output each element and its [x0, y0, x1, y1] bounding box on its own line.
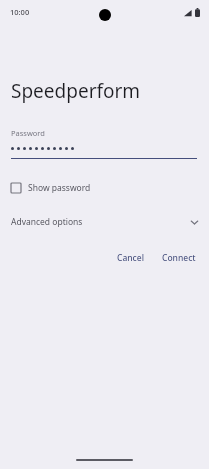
button[interactable]: Connect: [156, 248, 202, 268]
other: Expand advanced options: [189, 217, 200, 228]
staticText: 10:00: [10, 7, 30, 17]
staticText: Show password: [28, 182, 91, 194]
staticText: Cancel: [117, 252, 144, 264]
staticText: Advanced options: [11, 216, 83, 228]
staticText: Password: [11, 128, 45, 138]
button[interactable]: Show password: [10, 179, 92, 197]
staticText: Connect: [162, 252, 196, 264]
button[interactable]: Cancel: [111, 248, 150, 268]
button[interactable]: Advanced options: [0, 213, 209, 231]
staticText: Speedperform: [11, 78, 141, 104]
